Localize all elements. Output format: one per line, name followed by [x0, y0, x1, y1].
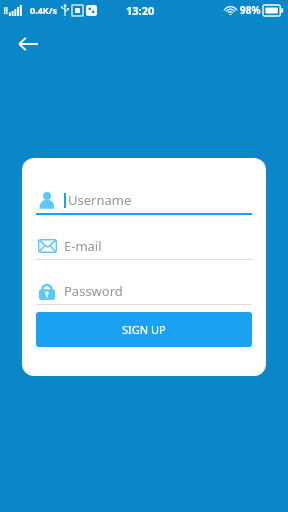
staticText: SIGN UP	[122, 322, 166, 337]
button[interactable]: Username	[36, 188, 252, 215]
button[interactable]: SIGN UP	[36, 312, 252, 347]
staticText: Username	[68, 191, 132, 209]
button[interactable]: Password	[36, 279, 252, 305]
staticText: 13:20	[126, 3, 155, 18]
button[interactable]: Back	[10, 26, 46, 62]
staticText: E-mail	[64, 237, 102, 255]
staticText: 0.4K/s	[30, 4, 58, 16]
button[interactable]: E-mail	[36, 234, 252, 260]
staticText: Password	[64, 282, 123, 300]
staticText: 98%	[240, 3, 261, 17]
